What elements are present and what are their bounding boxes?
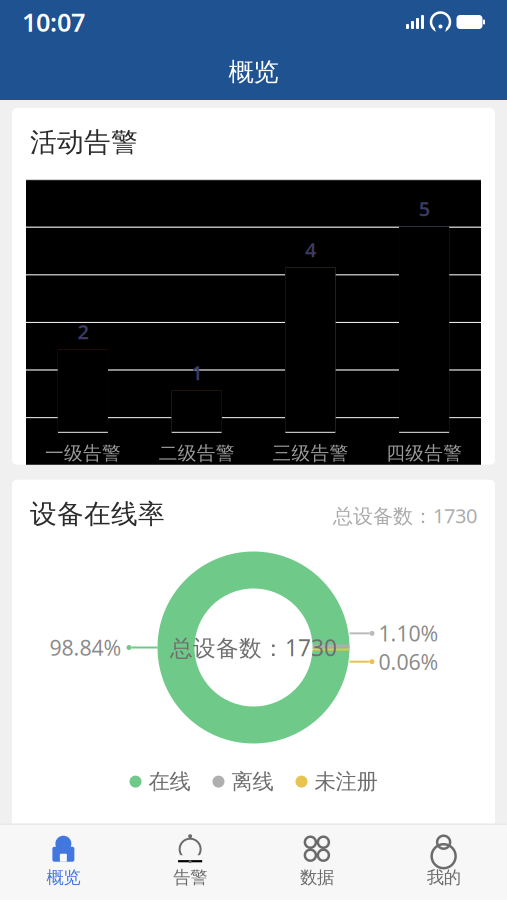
staticText: 总设备数：1730 bbox=[170, 632, 337, 663]
staticText: 活动告警 bbox=[30, 126, 138, 159]
staticText: 总设备数：1730 bbox=[333, 502, 477, 529]
staticText: 4 bbox=[305, 236, 316, 263]
staticText: 98.84% bbox=[49, 633, 121, 662]
staticText: 1 bbox=[191, 359, 202, 386]
staticText: 概览 bbox=[228, 56, 278, 87]
button[interactable]: 数据 bbox=[253, 829, 380, 894]
staticText: 未注册 bbox=[314, 768, 377, 795]
staticText: 设备在线率 bbox=[30, 498, 165, 531]
button[interactable]: 概览 bbox=[0, 829, 127, 894]
staticText: 二级告警 bbox=[159, 442, 235, 465]
staticText: 我的 bbox=[427, 867, 461, 888]
staticText: 10:07 bbox=[22, 5, 85, 39]
staticText: 在线 bbox=[148, 768, 190, 795]
staticText: 2 bbox=[77, 318, 88, 345]
staticText: 四级告警 bbox=[386, 442, 462, 465]
staticText: 三级告警 bbox=[272, 442, 348, 465]
staticText: 离线 bbox=[231, 768, 273, 795]
button[interactable]: 我的 bbox=[380, 829, 507, 894]
staticText: 数据 bbox=[300, 867, 334, 888]
staticText: 告警 bbox=[173, 867, 207, 888]
staticText: 0.06% bbox=[378, 647, 438, 676]
staticText: 1.10% bbox=[378, 619, 438, 647]
button[interactable]: 告警 bbox=[127, 829, 254, 894]
staticText: 概览 bbox=[46, 867, 80, 888]
staticText: 一级告警 bbox=[45, 442, 121, 465]
staticText: 5 bbox=[419, 195, 430, 222]
